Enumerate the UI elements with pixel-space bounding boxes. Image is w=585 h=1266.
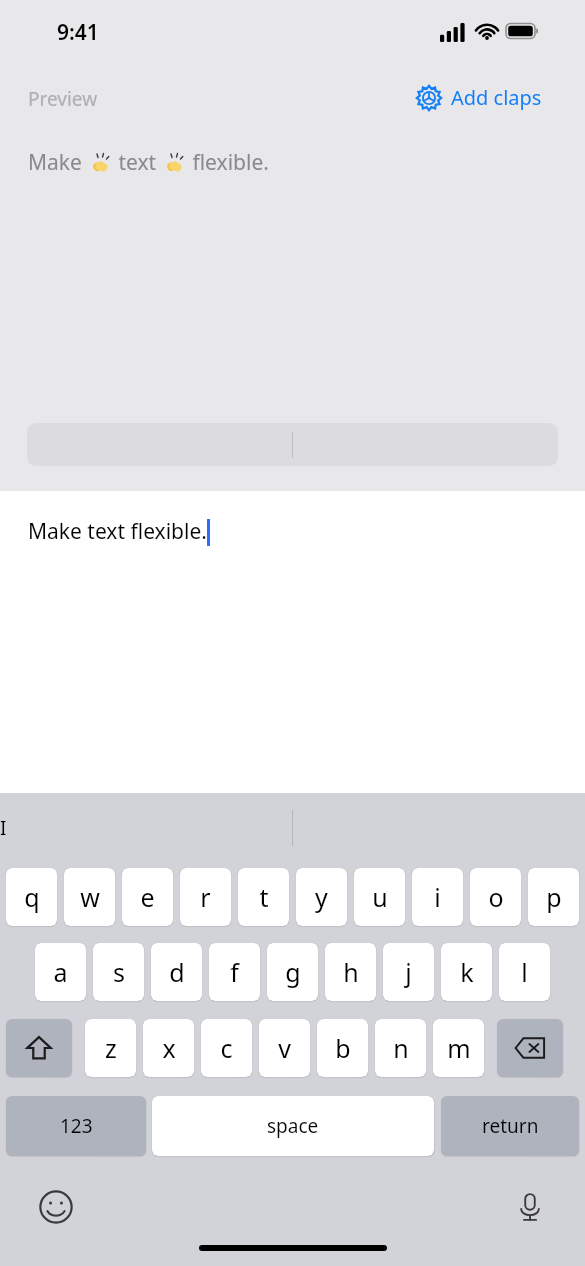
- button[interactable]: a: [35, 943, 86, 1001]
- button[interactable]: v: [259, 1019, 310, 1077]
- button[interactable]: return: [441, 1096, 579, 1156]
- staticText: 9:41: [57, 18, 99, 47]
- button[interactable]: n: [375, 1019, 426, 1077]
- staticText: h: [343, 955, 359, 989]
- staticText: b: [335, 1031, 351, 1065]
- other: Settings: [416, 85, 442, 111]
- staticText: Make text flexible.: [28, 517, 207, 546]
- staticText: m: [447, 1031, 471, 1065]
- staticText: o: [488, 880, 504, 914]
- staticText: space: [267, 1113, 319, 1139]
- staticText: g: [285, 955, 301, 989]
- staticText: y: [315, 880, 328, 914]
- staticText: x: [162, 1031, 176, 1065]
- staticText: e: [140, 880, 155, 914]
- staticText: c: [220, 1031, 233, 1065]
- button[interactable]: i: [412, 868, 463, 926]
- staticText: j: [405, 955, 412, 989]
- staticText: d: [169, 955, 185, 989]
- button[interactable]: Dictation: [510, 1187, 550, 1227]
- staticText: r: [200, 880, 211, 914]
- staticText: q: [24, 880, 40, 914]
- button[interactable]: 123: [6, 1096, 146, 1156]
- button[interactable]: h: [325, 943, 376, 1001]
- button[interactable]: z: [85, 1019, 136, 1077]
- staticText: p: [546, 880, 562, 914]
- button[interactable]: r: [180, 868, 231, 926]
- button[interactable]: b: [317, 1019, 368, 1077]
- button[interactable]: w: [64, 868, 115, 926]
- button[interactable]: j: [383, 943, 434, 1001]
- staticText: i: [434, 880, 441, 914]
- staticText: flexible.: [187, 148, 269, 177]
- staticText: v: [278, 1031, 291, 1065]
- button[interactable]: k: [441, 943, 492, 1001]
- staticText: t: [259, 880, 269, 914]
- button[interactable]: Shift: [6, 1019, 72, 1077]
- staticText: k: [460, 955, 474, 989]
- button[interactable]: Settings: [416, 84, 542, 111]
- button[interactable]: m: [433, 1019, 484, 1077]
- staticText: text: [113, 148, 162, 177]
- button[interactable]: e: [122, 868, 173, 926]
- button[interactable]: c: [201, 1019, 252, 1077]
- staticText: Make: [28, 148, 88, 177]
- staticText: a: [53, 955, 68, 989]
- staticText: w: [80, 880, 100, 914]
- staticText: u: [372, 880, 388, 914]
- staticText: z: [105, 1031, 117, 1065]
- button[interactable]: p: [528, 868, 579, 926]
- button[interactable]: y: [296, 868, 347, 926]
- staticText: s: [113, 955, 125, 989]
- button[interactable]: q: [6, 868, 57, 926]
- button[interactable]: g: [267, 943, 318, 1001]
- staticText: n: [393, 1031, 409, 1065]
- staticText: 123: [60, 1113, 93, 1139]
- staticText: f: [230, 955, 239, 989]
- button[interactable]: x: [143, 1019, 194, 1077]
- staticText: return: [482, 1113, 539, 1139]
- button[interactable]: space: [152, 1096, 434, 1156]
- button[interactable]: t: [238, 868, 289, 926]
- button[interactable]: Backspace: [497, 1019, 563, 1077]
- staticText: Preview: [28, 86, 98, 112]
- button[interactable]: l: [499, 943, 550, 1001]
- button[interactable]: o: [470, 868, 521, 926]
- staticText: l: [521, 955, 528, 989]
- button[interactable]: s: [93, 943, 144, 1001]
- staticText: Add claps: [451, 84, 542, 111]
- button[interactable]: d: [151, 943, 202, 1001]
- button[interactable]: Emoji: [36, 1187, 76, 1227]
- button[interactable]: u: [354, 868, 405, 926]
- button[interactable]: f: [209, 943, 260, 1001]
